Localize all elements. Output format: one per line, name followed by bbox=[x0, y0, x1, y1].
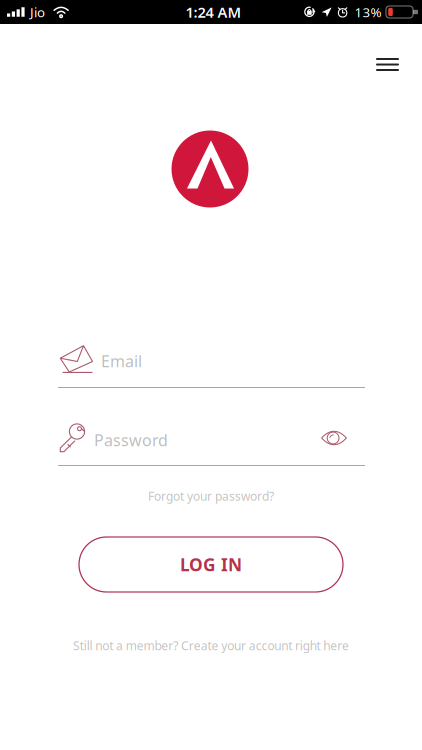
staticText: Still not a member? Create your account … bbox=[73, 637, 349, 653]
button[interactable]: Still not a member? Create your account … bbox=[63, 631, 359, 659]
staticText: LOG IN bbox=[180, 553, 242, 576]
button[interactable]: Menu bbox=[365, 46, 410, 83]
staticText: Forgot your password? bbox=[148, 488, 274, 504]
staticText: Jio bbox=[30, 3, 45, 21]
staticText: 13% bbox=[354, 3, 381, 21]
button[interactable]: Show password bbox=[312, 421, 356, 455]
button[interactable]: Forgot your password? bbox=[138, 482, 284, 510]
staticText: Email bbox=[101, 350, 142, 372]
staticText: Password bbox=[94, 429, 168, 451]
staticText: 1:24 AM bbox=[185, 2, 241, 22]
button[interactable]: LOG IN bbox=[79, 537, 343, 592]
